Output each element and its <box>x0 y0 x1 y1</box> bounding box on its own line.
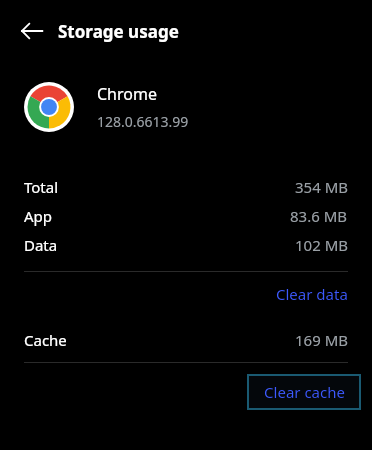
button[interactable]: Back <box>10 9 54 53</box>
staticText: Total <box>24 177 59 197</box>
button[interactable]: Total <box>24 177 348 197</box>
button[interactable]: Clear data <box>268 278 356 310</box>
button[interactable]: Chrome <box>24 82 348 132</box>
staticText: 102 MB <box>295 235 348 255</box>
staticText: 354 MB <box>295 177 348 197</box>
button[interactable]: Cache <box>24 330 348 350</box>
staticText: 128.0.6613.99 <box>97 112 189 131</box>
staticText: Cache <box>24 330 67 350</box>
staticText: Clear cache <box>264 382 345 402</box>
button[interactable]: App <box>24 206 348 226</box>
button[interactable]: Clear cache <box>247 374 361 410</box>
staticText: Storage usage <box>58 20 179 43</box>
button[interactable]: Data <box>24 235 348 255</box>
staticText: Data <box>24 235 58 255</box>
staticText: Clear data <box>276 284 348 304</box>
staticText: 83.6 MB <box>290 206 348 226</box>
staticText: App <box>24 206 53 226</box>
staticText: Chrome <box>97 83 157 105</box>
staticText: 169 MB <box>295 330 348 350</box>
